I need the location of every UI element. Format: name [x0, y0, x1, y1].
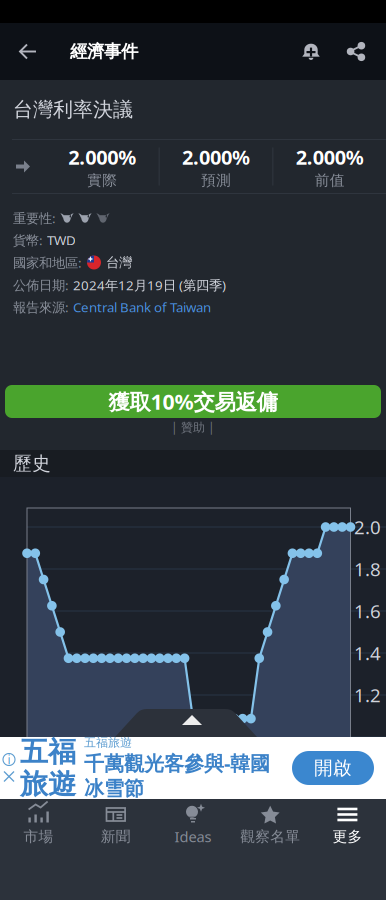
- button[interactable]: 觀察名單: [232, 799, 309, 851]
- button[interactable]: Ideas: [154, 799, 232, 851]
- staticText: 2.000%: [68, 144, 136, 170]
- staticText: 前值: [315, 171, 345, 189]
- staticText: 獲取10%交易返傭: [108, 387, 277, 416]
- staticText: 2.000%: [182, 144, 250, 170]
- staticText: 2024年12月19日 (第四季): [73, 276, 226, 294]
- staticText: 經濟事件: [70, 41, 138, 62]
- staticText: 台灣利率決議: [13, 97, 133, 122]
- staticText: 千萬觀光客參與-韓國: [84, 750, 270, 776]
- button[interactable]: 更多: [309, 799, 386, 851]
- staticText: 觀察名單: [240, 827, 300, 845]
- button[interactable]: 市場: [0, 799, 77, 851]
- staticText: 重要性:: [13, 209, 56, 227]
- staticText: Central Bank of Taiwan: [73, 298, 211, 316]
- staticText: 實際: [87, 171, 117, 189]
- staticText: TWD: [47, 231, 76, 249]
- button[interactable]: 新聞: [77, 799, 154, 851]
- staticText: 國家和地區:: [13, 254, 82, 271]
- staticText: | 贊助 |: [171, 419, 215, 435]
- staticText: i: [7, 751, 10, 767]
- staticText: 1.4: [354, 641, 381, 665]
- button[interactable]: 開啟: [292, 751, 374, 785]
- staticText: 2.0: [354, 515, 381, 539]
- staticText: 1.8: [354, 557, 381, 581]
- staticText: 1.6: [354, 599, 381, 623]
- staticText: 五福: [20, 735, 76, 769]
- staticText: 公佈日期:: [13, 276, 69, 294]
- staticText: 1.2: [354, 683, 381, 707]
- staticText: 報告來源:: [13, 298, 69, 316]
- staticText: 台灣: [106, 254, 132, 271]
- staticText: 更多: [332, 827, 362, 845]
- button[interactable]: Back: [8, 23, 48, 80]
- staticText: 貨幣:: [13, 231, 43, 249]
- button[interactable]: Central Bank of Taiwan: [73, 298, 211, 316]
- staticText: 預測: [201, 171, 231, 189]
- staticText: 市場: [24, 827, 54, 845]
- staticText: 冰雪節: [84, 776, 144, 801]
- staticText: 開啟: [314, 756, 352, 779]
- staticText: 旅遊: [20, 767, 76, 801]
- button[interactable]: Add alert: [288, 23, 334, 80]
- staticText: 五福旅遊: [84, 735, 132, 750]
- button[interactable]: Share: [334, 23, 378, 80]
- staticText: 2.000%: [296, 144, 364, 170]
- staticText: 新聞: [101, 827, 131, 845]
- button[interactable]: 獲取10%交易返傭: [5, 385, 381, 418]
- staticText: Ideas: [174, 827, 211, 846]
- staticText: 歷史: [13, 452, 51, 475]
